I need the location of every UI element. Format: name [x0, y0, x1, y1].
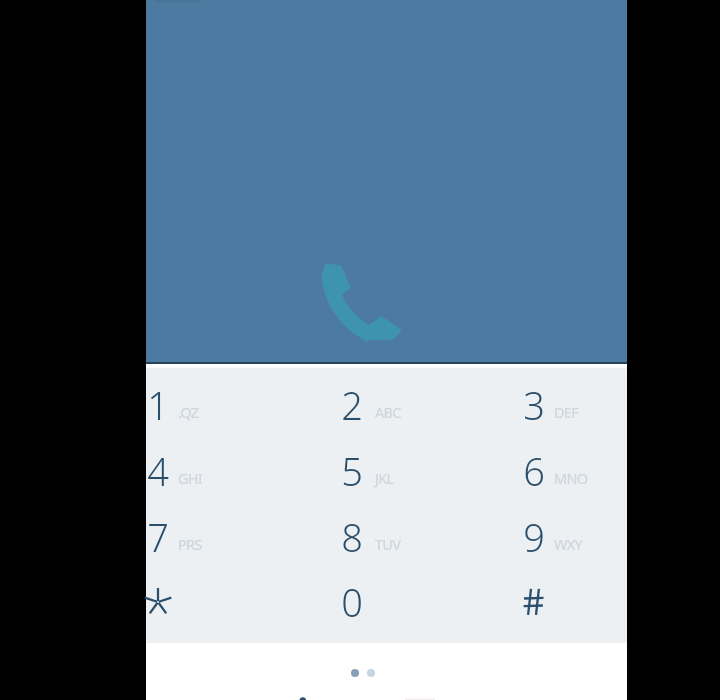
staticText: JKL [375, 468, 394, 488]
staticText: 6 [523, 445, 545, 497]
staticText: 1 [147, 379, 169, 431]
button[interactable]: Pound [467, 572, 627, 642]
staticText: ABC [375, 402, 401, 422]
staticText: TUV [375, 534, 401, 554]
staticText: 4 [147, 445, 169, 497]
staticText: WXY [554, 534, 582, 554]
button[interactable] [306, 363, 466, 433]
staticText: 3 [523, 379, 545, 431]
button[interactable]: Page 1 [347, 665, 363, 681]
button[interactable] [146, 363, 306, 433]
button[interactable]: Star [146, 572, 306, 642]
staticText: 9 [523, 511, 545, 563]
staticText: GHI [178, 468, 202, 488]
button[interactable]: Recents [346, 690, 426, 700]
button[interactable]: Page 2 [363, 665, 379, 681]
button[interactable] [306, 503, 466, 573]
button[interactable] [306, 572, 466, 642]
staticText: 8 [341, 511, 363, 563]
staticText: 5 [341, 445, 363, 497]
staticText: 7 [147, 511, 169, 563]
staticText: PRS [178, 534, 202, 554]
button[interactable] [467, 503, 627, 573]
button[interactable] [146, 503, 306, 573]
staticText: 0 [341, 576, 363, 628]
button[interactable] [306, 433, 466, 503]
staticText: MNO [554, 468, 588, 488]
staticText: 2 [341, 379, 363, 431]
staticText: DEF [554, 402, 578, 422]
button[interactable] [467, 433, 627, 503]
button[interactable] [146, 433, 306, 503]
button[interactable] [467, 363, 627, 433]
staticText: .QZ [178, 402, 199, 422]
button[interactable]: Favourites [228, 690, 308, 700]
